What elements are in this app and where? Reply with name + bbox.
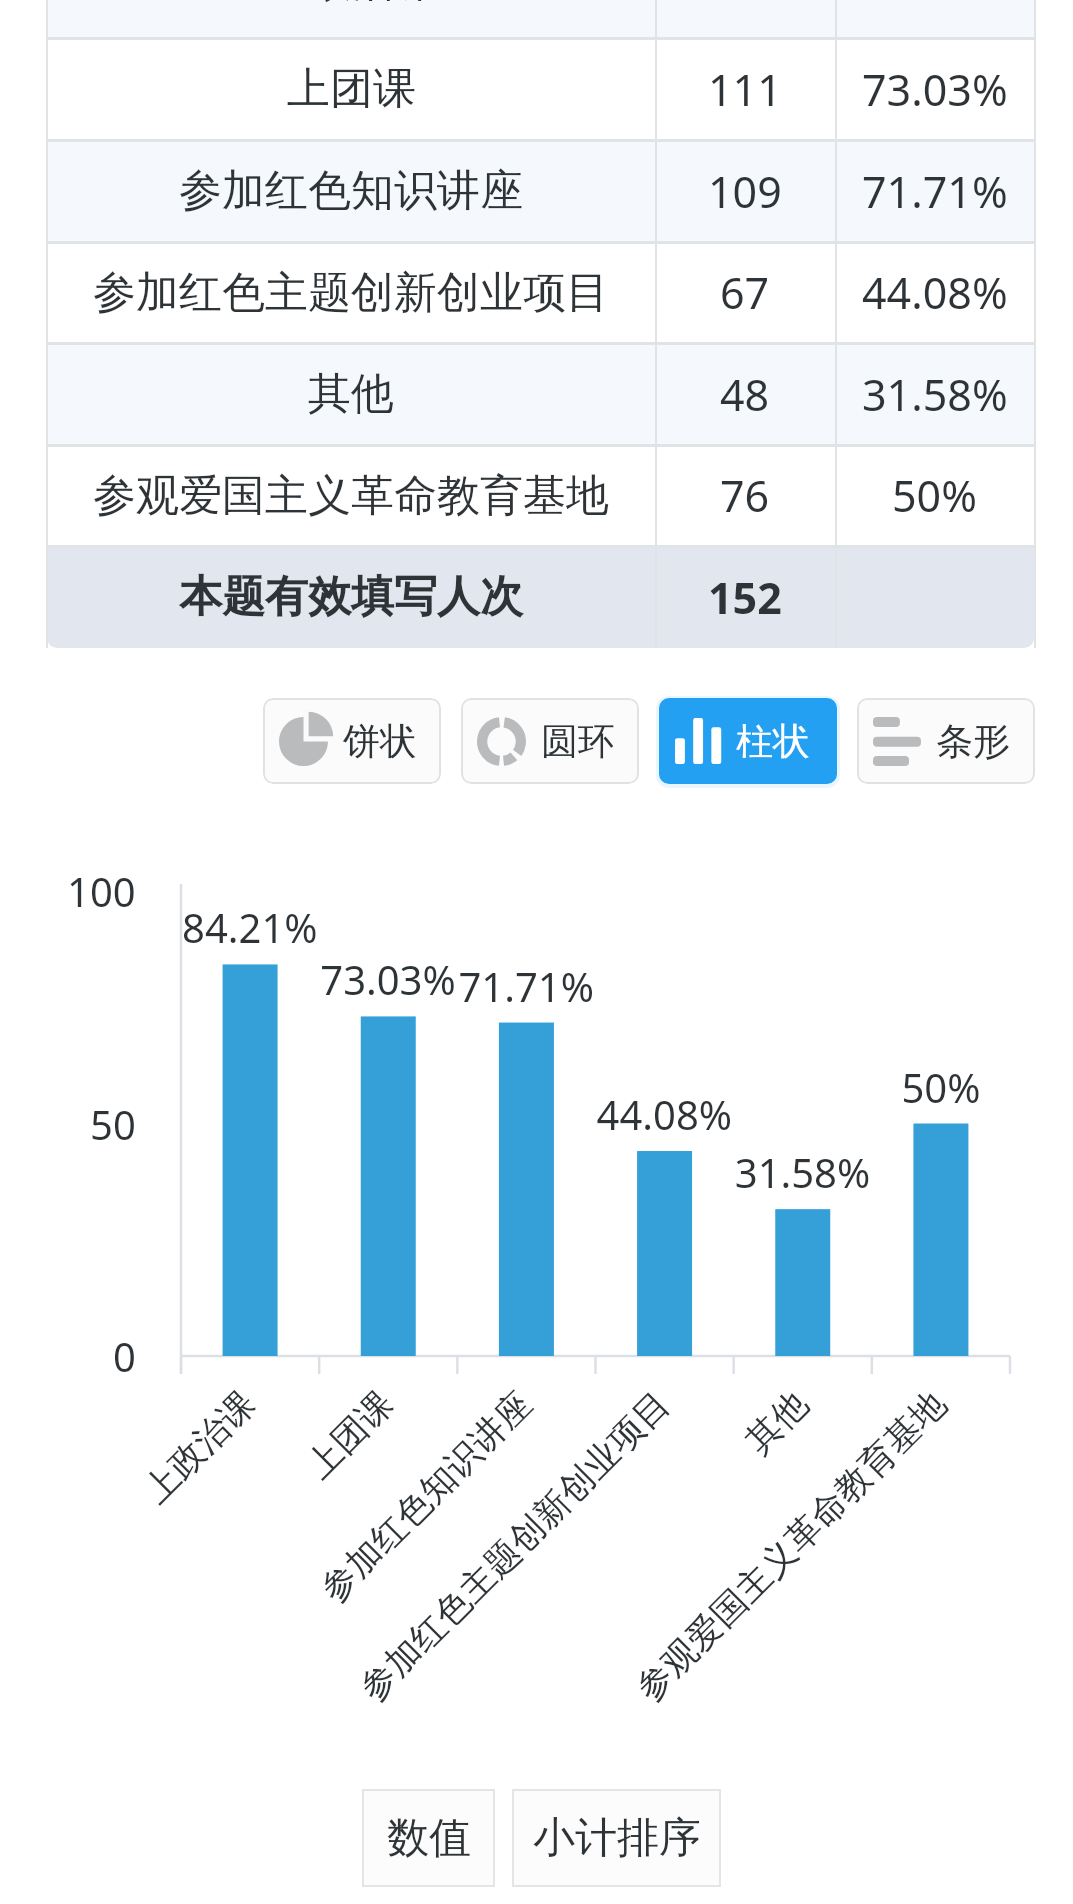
staticText: 44.08% [862, 263, 1008, 322]
button[interactable]: 饼状 [263, 698, 441, 784]
staticText: 71.71% [862, 162, 1008, 221]
staticText: 条形 [936, 718, 1010, 765]
staticText: 小计排序 [533, 1812, 701, 1865]
staticText: 圆环 [541, 718, 615, 765]
staticText: 76 [720, 466, 770, 525]
staticText: 48 [720, 365, 770, 424]
staticText: 50% [892, 466, 977, 525]
button[interactable]: 圆环 [461, 698, 639, 784]
button[interactable] [47, 343, 1034, 445]
staticText: 柱状 [736, 718, 810, 765]
staticText: 参加红色知识讲座 [179, 164, 523, 218]
staticText: 31.58% [862, 365, 1008, 424]
button[interactable] [47, 38, 1034, 140]
staticText: 111 [708, 60, 782, 119]
staticText: 152 [708, 568, 782, 627]
staticText: 73.03% [862, 60, 1008, 119]
button[interactable] [47, 0, 1034, 37]
staticText: 本题有效填写人次 [179, 570, 523, 624]
staticText: 饼状 [343, 718, 417, 765]
staticText: 其他 [308, 367, 394, 421]
button[interactable] [47, 242, 1034, 343]
button[interactable]: 条形 [857, 698, 1035, 784]
staticText: 参观爱国主义革命教育基地 [93, 469, 609, 523]
button[interactable]: 数值 [362, 1789, 495, 1887]
button[interactable] [47, 140, 1034, 242]
button[interactable] [47, 445, 1034, 546]
button[interactable]: 柱状 [659, 698, 837, 784]
staticText: 上团课 [287, 62, 416, 116]
staticText: 数值 [387, 1812, 471, 1865]
staticText: 109 [708, 162, 782, 221]
staticText: 67 [720, 263, 770, 322]
staticText: 参加红色主题创新创业项目 [93, 266, 609, 320]
button[interactable]: 小计排序 [512, 1789, 721, 1887]
